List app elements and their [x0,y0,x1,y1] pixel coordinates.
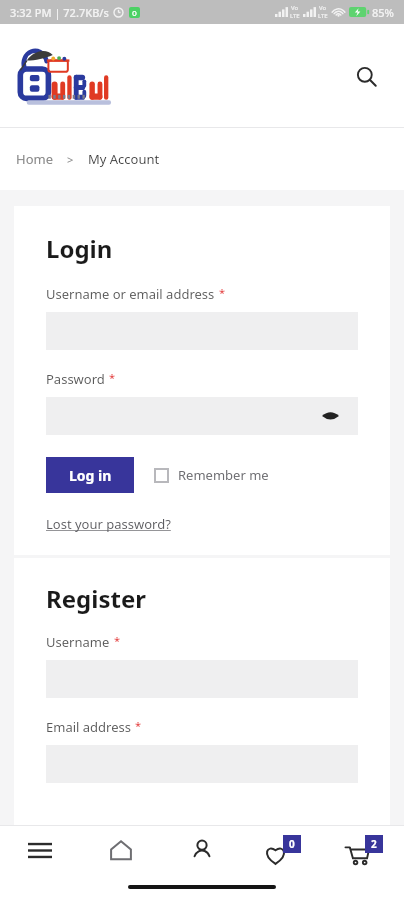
staticText: 85% [372,5,394,20]
button[interactable]: Lost your password? [46,515,171,533]
staticText: Vo [319,4,327,12]
staticText: Register [46,582,146,615]
staticText: Log in [69,466,112,485]
staticText: Password [46,370,105,388]
button[interactable]: Home [16,150,53,168]
staticText: * [114,633,121,648]
staticText: o [132,7,137,18]
button[interactable]: Remember me [154,466,269,484]
staticText: Username [46,633,110,651]
button[interactable]: Home [80,826,161,874]
button[interactable]: Wishlist [242,826,323,874]
button[interactable]: Show password [46,397,358,435]
button[interactable]: Search [346,56,386,96]
staticText: Vo [291,4,299,12]
other: Show password [318,404,342,428]
button[interactable]: Cart [323,826,404,874]
staticText: Login [46,232,113,265]
staticText: Username or email address [46,285,215,303]
staticText: 2 [371,837,377,851]
staticText: 3:32 PM | 72.7KB/s [10,5,109,20]
button[interactable]: My Account [88,150,160,168]
button[interactable]: Menu [0,826,80,874]
staticText: Email address [46,718,131,736]
staticText: * [219,285,226,300]
button[interactable]: Account [161,826,242,874]
staticText: 0 [289,837,295,851]
button[interactable]: Log in [46,457,134,493]
staticText: * [135,718,142,733]
staticText: Remember me [178,466,269,484]
staticText: LTE [290,12,300,20]
staticText: * [109,370,116,385]
staticText: LTE [318,12,328,20]
staticText: > [67,152,74,167]
